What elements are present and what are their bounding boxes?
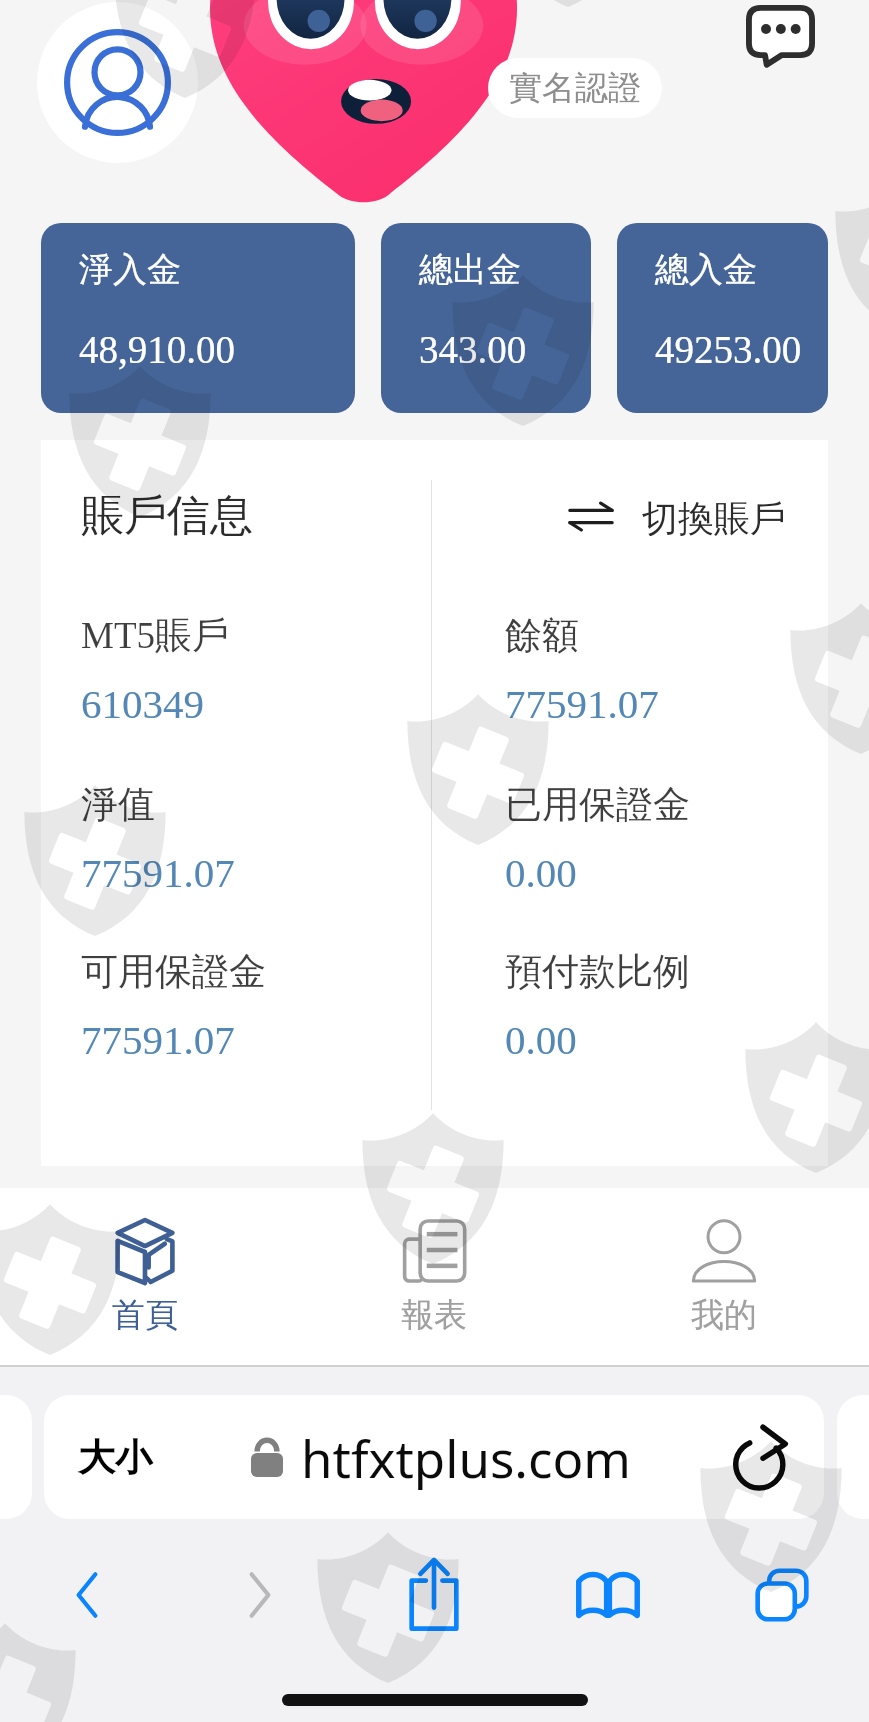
- button[interactable]: Profile: [37, 2, 198, 163]
- staticText: 淨值: [81, 781, 155, 828]
- staticText: 賬戶信息: [81, 489, 253, 543]
- button[interactable]: 總入金: [617, 223, 828, 413]
- staticText: 大小: [78, 1434, 152, 1481]
- button[interactable]: Text size: [44, 1395, 824, 1519]
- button[interactable]: 報表: [289, 1188, 579, 1365]
- staticText: htfxtplus.com: [301, 1423, 632, 1492]
- button[interactable]: Reload: [732, 1426, 794, 1488]
- button[interactable]: 首頁: [0, 1188, 289, 1365]
- staticText: 淨入金: [79, 248, 181, 291]
- button[interactable]: Forward: [173, 1535, 347, 1655]
- button[interactable]: 淨入金: [41, 223, 355, 413]
- button[interactable]: Text size: [78, 1434, 152, 1481]
- button[interactable]: 切換賬戶: [551, 488, 828, 544]
- staticText: 總出金: [419, 248, 521, 291]
- staticText: 總入金: [655, 248, 757, 291]
- staticText: MT5賬戶: [81, 612, 229, 659]
- button[interactable]: Bookmarks: [521, 1535, 695, 1655]
- button[interactable]: Share: [347, 1535, 521, 1655]
- button[interactable]: Back: [0, 1535, 173, 1655]
- staticText: 343.00: [419, 328, 527, 371]
- staticText: 0.00: [505, 1017, 577, 1062]
- staticText: 已用保證金: [505, 781, 690, 828]
- staticText: 48,910.00: [79, 328, 235, 371]
- button[interactable]: Tabs: [695, 1535, 869, 1655]
- staticText: 我的: [691, 1294, 757, 1336]
- staticText: 切換賬戶: [642, 496, 786, 536]
- button[interactable]: 我的: [579, 1188, 869, 1365]
- button[interactable]: Messages: [734, 0, 827, 72]
- staticText: 可用保證金: [81, 948, 266, 995]
- staticText: 77591.07: [81, 850, 235, 895]
- button[interactable]: 總出金: [381, 223, 591, 413]
- staticText: 610349: [81, 681, 204, 726]
- button[interactable]: 實名認證: [488, 58, 662, 118]
- staticText: 餘額: [505, 612, 579, 659]
- staticText: 0.00: [505, 850, 577, 895]
- staticText: 首頁: [112, 1294, 178, 1336]
- staticText: 報表: [401, 1294, 467, 1336]
- staticText: 49253.00: [655, 328, 802, 371]
- staticText: 預付款比例: [505, 948, 690, 995]
- staticText: 實名認證: [509, 67, 641, 109]
- staticText: 77591.07: [81, 1017, 235, 1062]
- staticText: 77591.07: [505, 681, 659, 726]
